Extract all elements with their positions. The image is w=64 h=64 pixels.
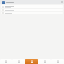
button[interactable] xyxy=(1,5,63,8)
button[interactable] xyxy=(1,9,63,11)
button[interactable] xyxy=(1,12,63,14)
button[interactable]: Profile xyxy=(51,59,64,64)
button[interactable]: Activity xyxy=(25,59,38,64)
button[interactable]: Search xyxy=(12,59,25,64)
button[interactable]: Alerts xyxy=(38,59,51,64)
button[interactable]: Home xyxy=(0,59,12,64)
button[interactable]: Menu xyxy=(2,1,5,4)
